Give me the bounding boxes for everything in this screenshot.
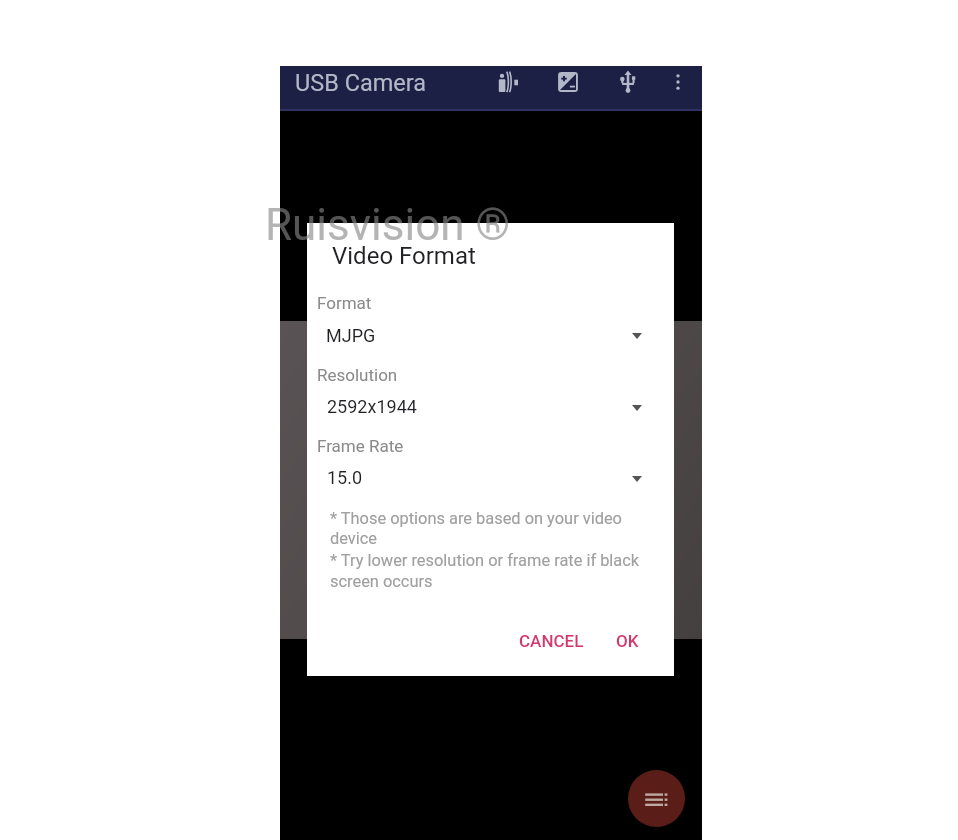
button[interactable]: More options [659, 63, 697, 101]
staticText: Resolution [317, 365, 398, 385]
staticText: Format [317, 293, 372, 313]
staticText: CANCEL [519, 631, 584, 651]
button[interactable]: Show list [628, 770, 685, 827]
staticText: 15.0 [327, 467, 363, 488]
button[interactable]: CANCEL [509, 623, 594, 659]
staticText: OK [616, 631, 639, 651]
staticText: * Those options are based on your video [330, 509, 622, 528]
button[interactable]: OK [605, 623, 650, 659]
button[interactable]: USB Camera [295, 69, 427, 97]
button[interactable]: Motion detection [489, 63, 527, 101]
button[interactable]: Exposure compensation [549, 63, 587, 101]
staticText: Video Format [332, 242, 476, 270]
staticText: device [330, 529, 378, 548]
staticText: screen occurs [330, 572, 433, 591]
staticText: * Try lower resolution or frame rate if … [330, 551, 640, 570]
staticText: Ruisvision ® [265, 199, 511, 251]
staticText: 2592x1944 [327, 396, 417, 417]
staticText: MJPG [326, 325, 376, 346]
button[interactable]: USB device [609, 63, 647, 101]
staticText: Frame Rate [317, 436, 404, 456]
